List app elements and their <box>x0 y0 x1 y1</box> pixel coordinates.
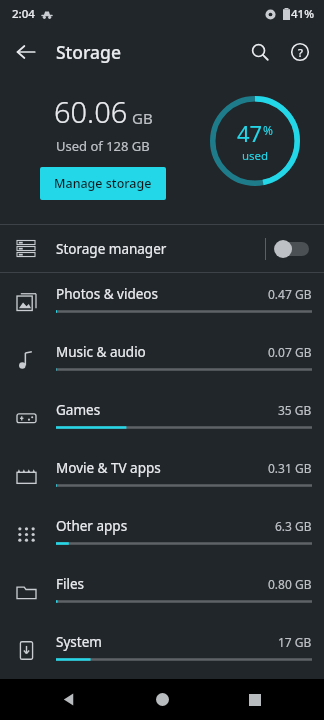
staticText: ? <box>298 45 303 60</box>
staticText: Movie & TV apps <box>56 459 161 477</box>
button[interactable]: Movie & TV apps <box>0 447 324 505</box>
button[interactable]: Home <box>138 679 186 720</box>
staticText: System <box>56 633 102 651</box>
button[interactable]: Games <box>0 389 324 447</box>
button[interactable]: Storage manager toggle <box>270 231 312 267</box>
button[interactable]: Photos & videos <box>0 273 324 331</box>
button[interactable]: Manage storage <box>40 167 166 200</box>
button[interactable]: Storage manager <box>0 225 324 272</box>
staticText: 0.80 GB <box>268 576 312 592</box>
staticText: 35 GB <box>278 402 312 418</box>
button[interactable]: Search <box>240 32 280 72</box>
staticText: Other apps <box>56 517 128 535</box>
staticText: Games <box>56 401 101 419</box>
staticText: 0.47 GB <box>268 286 312 302</box>
staticText: Storage <box>56 40 121 64</box>
staticText: 47 <box>237 118 263 148</box>
button[interactable]: Other apps <box>0 505 324 563</box>
staticText: 60.06 <box>54 92 128 131</box>
staticText: 41% <box>291 6 314 22</box>
staticText: Storage manager <box>56 240 167 258</box>
staticText: 17 GB <box>278 634 312 650</box>
staticText: Photos & videos <box>56 285 158 303</box>
staticText: 0.31 GB <box>268 460 312 476</box>
staticText: Music & audio <box>56 343 146 361</box>
button[interactable]: Back <box>45 679 93 720</box>
staticText: Files <box>56 575 85 593</box>
staticText: used <box>242 148 269 164</box>
staticText: 2:04 <box>12 6 35 22</box>
staticText: 6.3 GB <box>275 518 312 534</box>
button[interactable]: Help <box>280 32 320 72</box>
button[interactable]: System <box>0 621 324 679</box>
button[interactable]: Back <box>6 32 46 72</box>
staticText: GB <box>132 108 153 128</box>
staticText: 0.07 GB <box>268 344 312 360</box>
button[interactable]: Recent apps <box>231 679 279 720</box>
staticText: % <box>263 122 273 138</box>
staticText: Used of 128 GB <box>56 137 150 155</box>
button[interactable]: Files <box>0 563 324 621</box>
staticText: Manage storage <box>54 175 152 192</box>
button[interactable]: Music & audio <box>0 331 324 389</box>
